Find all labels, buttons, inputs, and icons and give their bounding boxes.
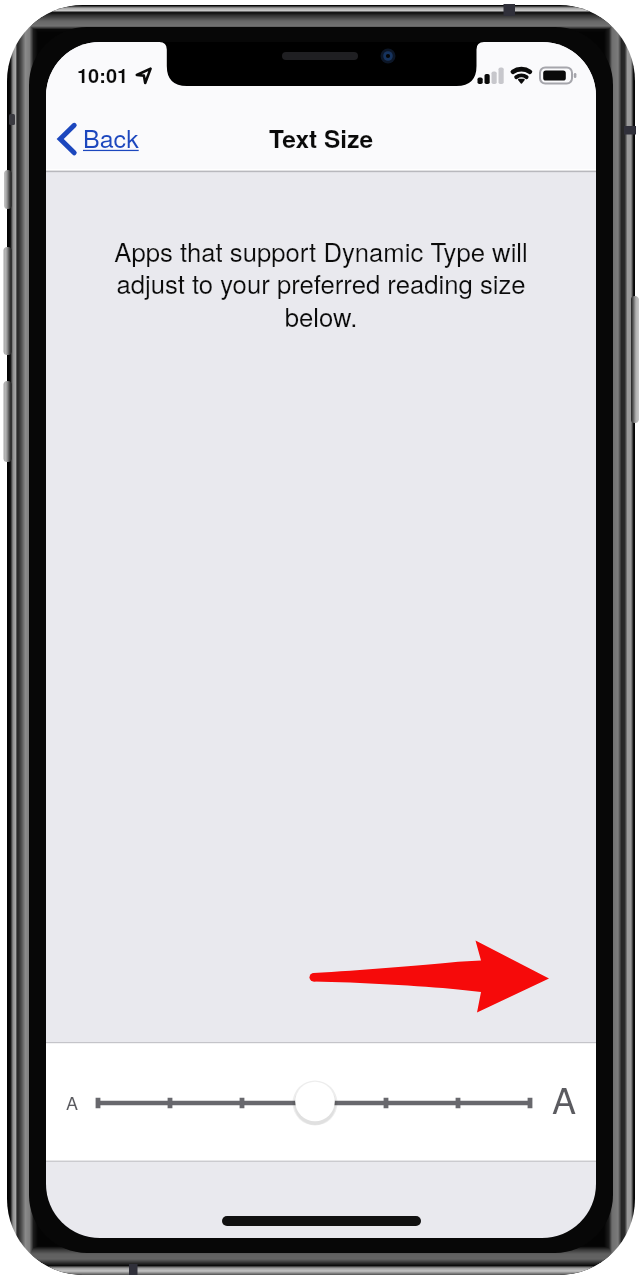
staticText: Back bbox=[83, 119, 139, 155]
button[interactable]: Back bbox=[52, 111, 146, 163]
button[interactable]: Text size slider bbox=[46, 1043, 596, 1161]
staticText: 10:01 bbox=[77, 60, 129, 89]
staticText: Text Size bbox=[269, 120, 374, 155]
staticText: A bbox=[552, 1073, 577, 1125]
staticText: Apps that support Dynamic Type will adju… bbox=[98, 232, 544, 335]
staticText: A bbox=[66, 1089, 79, 1115]
button[interactable]: Text size slider handle bbox=[294, 1081, 336, 1123]
